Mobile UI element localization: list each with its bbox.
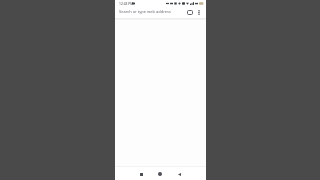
- button[interactable]: Tabs: [185, 8, 194, 17]
- staticText: 12:43 PM: [119, 1, 134, 5]
- button[interactable]: More options: [194, 8, 203, 17]
- staticText: Search or type web address: [119, 9, 171, 14]
- button[interactable]: Back: [175, 170, 183, 178]
- button[interactable]: Home: [156, 170, 164, 178]
- button[interactable]: Recents: [137, 170, 145, 178]
- button[interactable]: Search or type web address: [115, 6, 187, 18]
